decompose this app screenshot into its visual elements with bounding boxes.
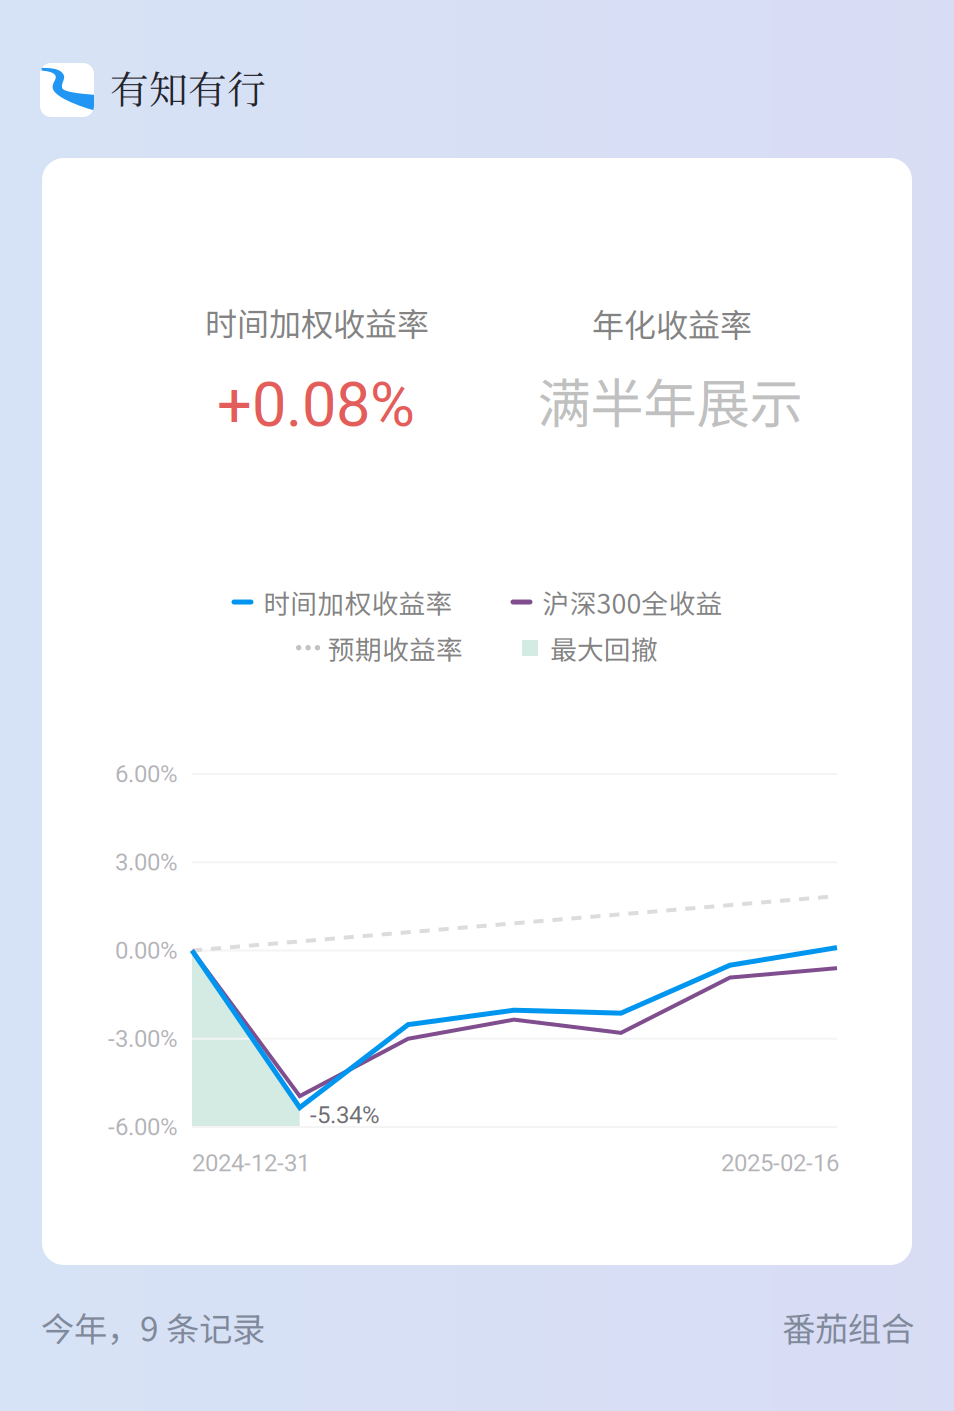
staticText: -5.34% — [310, 1101, 380, 1129]
staticText: 年化收益率 — [592, 300, 752, 346]
button[interactable]: 有知有行 — [40, 62, 266, 118]
staticText: 沪深300全收益 — [542, 583, 722, 621]
button[interactable]: 时间加权收益率 — [42, 158, 912, 1265]
staticText: 今年，9 条记录 — [41, 1303, 265, 1351]
staticText: 满半年展示 — [537, 361, 802, 439]
staticText: 2025-02-16 — [721, 1149, 839, 1177]
button[interactable]: 今年，9 条记录 — [41, 1303, 265, 1351]
staticText: 最大回撤 — [550, 629, 658, 667]
staticText: 2024-12-31 — [192, 1149, 310, 1177]
staticText: 6.00% — [115, 760, 178, 788]
staticText: -3.00% — [108, 1025, 178, 1053]
staticText: 预期收益率 — [328, 629, 463, 667]
staticText: -6.00% — [108, 1113, 178, 1141]
staticText: 番茄组合 — [782, 1303, 914, 1351]
button[interactable]: 番茄组合 — [782, 1303, 914, 1351]
staticText: 有知有行 — [110, 59, 266, 115]
staticText: 3.00% — [115, 848, 178, 876]
staticText: 时间加权收益率 — [263, 583, 452, 621]
staticText: 0.00% — [115, 936, 178, 964]
staticText: 时间加权收益率 — [205, 299, 429, 345]
staticText: +0.08% — [217, 369, 415, 441]
